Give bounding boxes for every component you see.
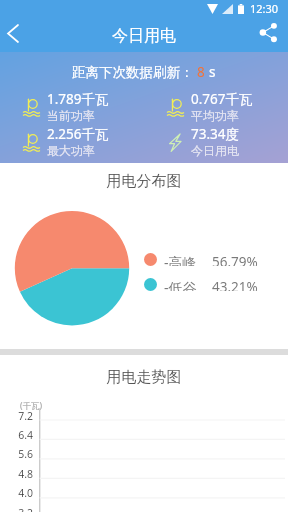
staticText: 2.256千瓦 <box>47 125 109 143</box>
staticText: 6.4 <box>0 428 33 442</box>
staticText: 平均功率 <box>191 108 239 123</box>
staticText: (千瓦) <box>20 400 43 412</box>
staticText: 5.6 <box>0 447 33 461</box>
staticText: 今日用电 <box>191 143 239 158</box>
staticText: 4.8 <box>0 467 33 481</box>
staticText: -低谷 <box>164 278 205 291</box>
staticText: 7.2 <box>0 409 33 423</box>
staticText: 用电走势图 <box>0 368 288 387</box>
staticText: -高峰 <box>164 253 205 266</box>
staticText: 12:30 <box>250 1 279 16</box>
staticText: 3.2 <box>0 506 33 512</box>
staticText: 最大功率 <box>47 143 95 158</box>
button[interactable]: Share <box>251 15 285 49</box>
staticText: 43.21% <box>212 278 258 291</box>
staticText: 56.79% <box>212 253 258 266</box>
staticText: s <box>209 63 216 81</box>
button[interactable]: Back <box>0 16 30 50</box>
staticText: 73.34度 <box>191 125 240 143</box>
staticText: 0.767千瓦 <box>191 90 253 108</box>
staticText: 4.0 <box>0 486 33 500</box>
staticText: 当前功率 <box>47 108 95 123</box>
staticText: 1.789千瓦 <box>47 90 109 108</box>
staticText: 用电分布图 <box>0 172 288 191</box>
staticText: 8 <box>197 63 205 81</box>
staticText: 今日用电 <box>0 26 288 46</box>
staticText: 距离下次数据刷新： <box>72 64 194 81</box>
